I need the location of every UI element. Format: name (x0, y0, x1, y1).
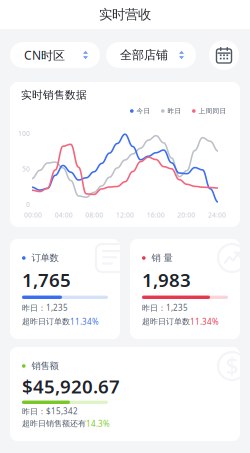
staticText: 超昨日销售额还有 (22, 419, 86, 429)
staticText: 昨日：1,235 (22, 302, 68, 313)
staticText: 08:00 (85, 211, 103, 219)
staticText: 1,765 (22, 267, 71, 292)
staticText: 销 量 (152, 252, 173, 264)
staticText: 实时销售数据 (21, 88, 87, 101)
staticText: 全部店铺 (120, 48, 168, 62)
staticText: 24:00 (208, 211, 226, 219)
staticText: 1,983 (142, 267, 191, 292)
staticText: CN时区 (24, 47, 65, 63)
staticText: 昨日：1,235 (142, 302, 188, 313)
staticText: 超昨日订单数 (142, 317, 190, 327)
staticText: 14.3% (86, 418, 110, 429)
staticText: 销售额 (32, 360, 59, 372)
staticText: 04:00 (55, 211, 73, 219)
staticText: 昨日 (168, 107, 182, 115)
staticText: 实时营收 (99, 6, 151, 23)
staticText: 12:00 (116, 211, 134, 219)
staticText: 今日 (137, 107, 151, 115)
staticText: 0 (26, 200, 30, 209)
button[interactable]: Select date (209, 40, 239, 70)
staticText: $ (225, 351, 238, 381)
staticText: 100 (18, 129, 30, 138)
staticText: 20:00 (177, 211, 195, 219)
staticText: 昨日：$15,342 (22, 406, 78, 416)
button[interactable]: 全部店铺 (106, 42, 196, 68)
staticText: 11.34% (190, 316, 219, 327)
staticText: 超昨日订单数 (22, 317, 70, 327)
staticText: 16:00 (147, 211, 165, 219)
staticText: 11.34% (70, 316, 99, 327)
staticText: 订单数 (32, 252, 59, 264)
staticText: $45,920.67 (22, 374, 120, 399)
staticText: 50 (22, 165, 30, 173)
button[interactable]: CN时区 (10, 42, 100, 68)
staticText: 上周同日 (199, 107, 227, 115)
staticText: 00:00 (24, 211, 42, 219)
